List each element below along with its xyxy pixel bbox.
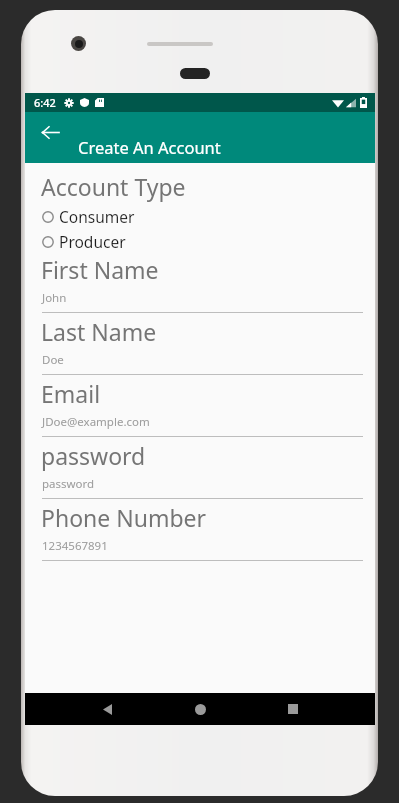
staticText: password <box>42 476 95 492</box>
button[interactable]: Producer <box>42 229 375 254</box>
staticText: Create An Account <box>78 136 221 158</box>
staticText: Account Type <box>41 171 186 202</box>
staticText: Email <box>41 378 101 409</box>
staticText: JDoe@example.com <box>42 414 150 430</box>
button[interactable]: password <box>42 476 363 499</box>
staticText: John <box>42 290 67 306</box>
staticText: Last Name <box>41 316 157 347</box>
staticText: First Name <box>41 254 159 285</box>
staticText: Producer <box>59 231 126 252</box>
staticText: 6:42 <box>34 95 56 110</box>
button[interactable]: Back <box>88 693 128 725</box>
staticText: password <box>41 440 146 471</box>
button[interactable]: 1234567891 <box>42 538 363 561</box>
button[interactable]: Doe <box>42 352 363 375</box>
button[interactable]: Back <box>31 113 69 151</box>
button[interactable]: John <box>42 290 363 313</box>
staticText: Doe <box>42 352 64 368</box>
button[interactable]: Consumer <box>42 204 375 229</box>
button[interactable]: Recents <box>273 693 313 725</box>
staticText: Phone Number <box>41 502 207 533</box>
staticText: Consumer <box>59 206 135 227</box>
staticText: 1234567891 <box>42 538 108 554</box>
button[interactable]: JDoe@example.com <box>42 414 363 437</box>
button[interactable]: Home <box>180 693 220 725</box>
